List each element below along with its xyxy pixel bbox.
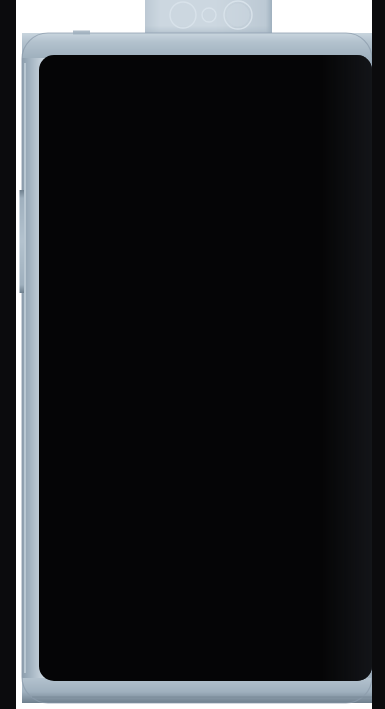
other: Phone device product render (0, 0, 385, 709)
